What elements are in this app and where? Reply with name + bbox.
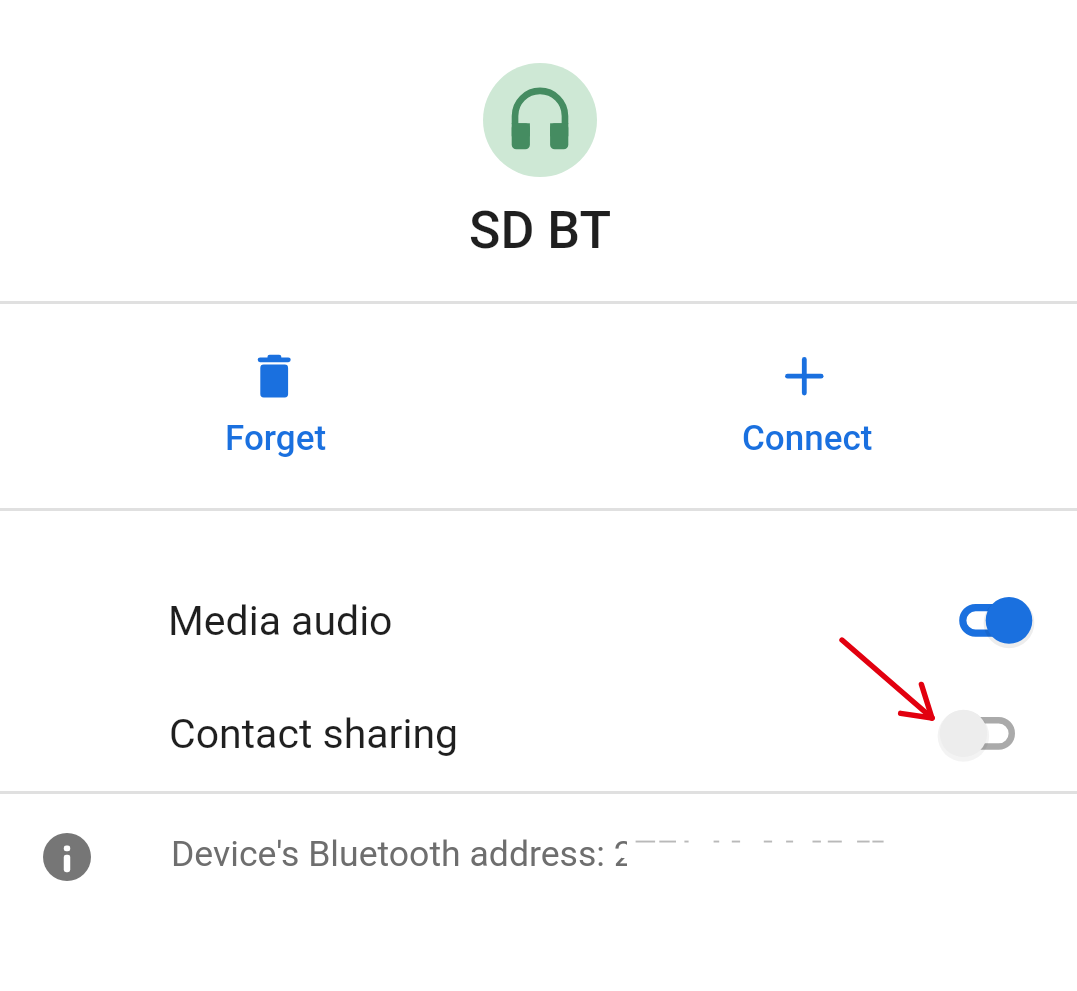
button[interactable]: Contact sharing, off — [0, 679, 1077, 793]
button[interactable]: Forget — [0, 302, 538, 507]
other: Information — [43, 833, 91, 881]
staticText: Forget — [225, 418, 327, 459]
button[interactable]: Media audio, on — [0, 565, 1077, 679]
staticText: Contact sharing — [169, 710, 459, 758]
staticText: Device's Bluetooth address: 2 — [171, 833, 634, 875]
staticText: Media audio — [168, 597, 393, 645]
staticText: SD BT — [469, 200, 612, 261]
button[interactable]: Connect — [538, 302, 1077, 507]
staticText: Connect — [742, 418, 873, 459]
